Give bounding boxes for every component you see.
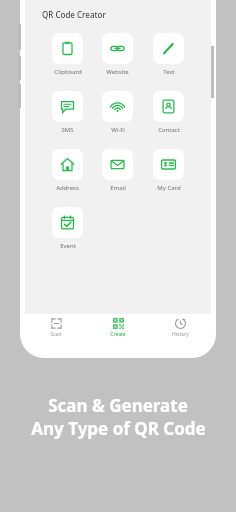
staticText: Any Type of QR Code <box>31 417 206 440</box>
staticText: Website <box>106 68 129 76</box>
button[interactable]: Event <box>52 207 83 250</box>
button[interactable]: Create <box>87 314 149 338</box>
button[interactable]: History <box>149 314 211 338</box>
staticText: History <box>172 331 189 338</box>
button[interactable]: Address <box>52 149 83 192</box>
staticText: Email <box>110 184 126 192</box>
staticText: My Card <box>157 184 181 192</box>
staticText: Create <box>110 331 126 338</box>
staticText: Text <box>163 68 175 76</box>
staticText: Event <box>60 242 76 250</box>
staticText: QR Code Creator <box>42 9 106 20</box>
staticText: SMS <box>61 126 74 134</box>
button[interactable]: Scan <box>25 314 87 338</box>
staticText: Contact <box>158 126 180 134</box>
button[interactable]: SMS <box>52 91 83 134</box>
staticText: Clipboard <box>54 68 82 76</box>
staticText: Scan <box>50 331 62 338</box>
button[interactable]: Contact <box>153 91 184 134</box>
button[interactable]: Wi-Fi <box>102 91 133 134</box>
staticText: Address <box>56 184 79 192</box>
button[interactable]: Clipboard <box>52 33 83 76</box>
button[interactable]: Email <box>102 149 133 192</box>
button[interactable]: Text <box>153 33 184 76</box>
staticText: Scan & Generate <box>48 394 188 417</box>
button[interactable]: Website <box>102 33 133 76</box>
staticText: Wi-Fi <box>111 126 125 134</box>
button[interactable]: My Card <box>153 149 184 192</box>
